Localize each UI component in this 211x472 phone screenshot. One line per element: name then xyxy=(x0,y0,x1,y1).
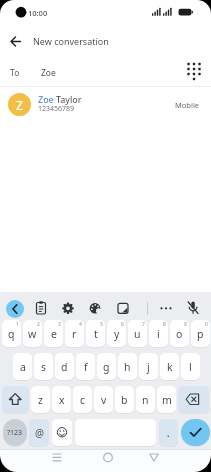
staticText: f xyxy=(84,360,88,374)
staticText: e xyxy=(51,327,57,341)
button[interactable] xyxy=(156,298,176,318)
staticText: . xyxy=(167,427,170,439)
staticText: l xyxy=(189,360,192,374)
staticText: Z xyxy=(16,97,23,113)
staticText: 3 xyxy=(58,321,61,328)
staticText: 5 xyxy=(100,321,103,328)
button[interactable]: x xyxy=(52,386,71,413)
button[interactable]: . xyxy=(159,419,178,446)
button[interactable]: h xyxy=(118,353,137,380)
button[interactable]: @ xyxy=(29,419,49,446)
button[interactable]: y xyxy=(107,320,126,347)
button[interactable]: q xyxy=(2,320,21,347)
button[interactable] xyxy=(178,386,209,413)
button[interactable] xyxy=(0,88,211,120)
button[interactable]: s xyxy=(34,353,53,380)
staticText: 123456789 xyxy=(38,104,75,114)
staticText: 2 xyxy=(37,321,40,328)
staticText: i xyxy=(157,327,160,341)
button[interactable]: o xyxy=(170,320,189,347)
staticText: d xyxy=(61,360,68,374)
button[interactable]: k xyxy=(160,353,179,380)
button[interactable]: u xyxy=(128,320,147,347)
staticText: t xyxy=(94,327,98,341)
staticText: m xyxy=(162,393,172,407)
button[interactable]: r xyxy=(65,320,84,347)
staticText: b xyxy=(121,393,128,407)
staticText: c xyxy=(80,393,86,407)
button[interactable]: g xyxy=(97,353,116,380)
staticText: y xyxy=(114,327,120,341)
button[interactable]: d xyxy=(55,353,74,380)
button[interactable]: e xyxy=(44,320,63,347)
staticText: r xyxy=(72,327,77,341)
button[interactable]: z xyxy=(31,386,50,413)
staticText: p xyxy=(197,327,204,341)
staticText: g xyxy=(103,360,110,374)
staticText: Zoe Taylor xyxy=(38,93,82,105)
staticText: j xyxy=(147,360,150,374)
staticText: To xyxy=(10,67,20,79)
button[interactable] xyxy=(31,298,51,318)
button[interactable] xyxy=(181,419,210,446)
button[interactable] xyxy=(5,33,23,51)
button[interactable] xyxy=(144,447,164,468)
button[interactable] xyxy=(113,298,133,318)
staticText: Mobile xyxy=(175,100,200,110)
button[interactable]: w xyxy=(23,320,42,347)
staticText: 10:00 xyxy=(28,8,48,18)
button[interactable]: i xyxy=(149,320,168,347)
button[interactable] xyxy=(6,300,24,318)
staticText: q xyxy=(8,327,15,341)
button[interactable]: ?123 xyxy=(3,419,27,446)
button[interactable]: n xyxy=(136,386,155,413)
staticText: Zoe xyxy=(41,67,56,79)
button[interactable]: b xyxy=(115,386,134,413)
button[interactable] xyxy=(85,298,105,318)
staticText: a xyxy=(20,360,26,374)
button[interactable] xyxy=(98,447,118,468)
staticText: ?123 xyxy=(7,428,23,438)
staticText: w xyxy=(28,327,37,341)
button[interactable]: m xyxy=(157,386,176,413)
button[interactable]: p xyxy=(191,320,210,347)
staticText: 9 xyxy=(184,321,187,328)
button[interactable] xyxy=(2,386,29,413)
staticText: h xyxy=(124,360,131,374)
staticText: u xyxy=(134,327,141,341)
staticText: x xyxy=(59,393,65,407)
button[interactable] xyxy=(58,298,78,318)
staticText: 0 xyxy=(205,321,208,328)
staticText: v xyxy=(101,393,107,407)
button[interactable]: f xyxy=(76,353,95,380)
button[interactable] xyxy=(183,298,203,318)
staticText: 6 xyxy=(121,321,124,328)
staticText: k xyxy=(167,360,173,374)
button[interactable] xyxy=(52,419,72,446)
staticText: n xyxy=(142,393,149,407)
staticText: 1 xyxy=(16,321,19,328)
staticText: 4 xyxy=(79,321,82,328)
staticText: New conversation xyxy=(33,35,109,47)
staticText: z xyxy=(38,393,43,407)
staticText: 7 xyxy=(142,321,145,328)
button[interactable]: j xyxy=(139,353,158,380)
button[interactable]: a xyxy=(13,353,32,380)
staticText: s xyxy=(41,360,47,374)
button[interactable]: v xyxy=(94,386,113,413)
button[interactable] xyxy=(182,59,206,85)
staticText: o xyxy=(176,327,183,341)
button[interactable] xyxy=(47,447,67,468)
staticText: @ xyxy=(35,426,44,440)
button[interactable]: t xyxy=(86,320,105,347)
button[interactable]: l xyxy=(181,353,200,380)
staticText: 8 xyxy=(163,321,166,328)
button[interactable]: c xyxy=(73,386,92,413)
